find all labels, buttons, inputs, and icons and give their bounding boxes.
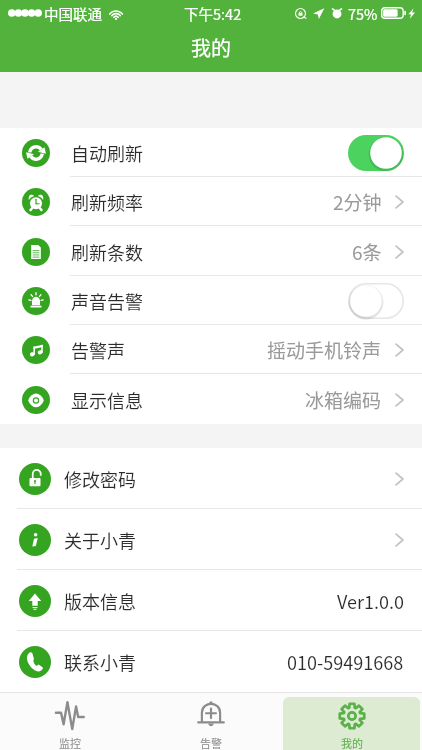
button[interactable]: 修改密码	[0, 448, 422, 509]
staticText: 告警	[200, 735, 222, 750]
staticText: 6条	[352, 238, 382, 266]
staticText: 2分钟	[333, 188, 382, 216]
staticText: 监控	[59, 735, 81, 750]
staticText: 修改密码	[64, 466, 136, 492]
button[interactable]: 联系小青	[0, 631, 422, 692]
button[interactable]: Switch off	[348, 283, 404, 319]
staticText: 关于小青	[64, 527, 136, 553]
button[interactable]: 告警声	[0, 325, 422, 374]
staticText: 75%	[348, 3, 378, 24]
staticText: 010-59491668	[287, 649, 404, 675]
staticText: 摇动手机铃声	[267, 336, 382, 364]
staticText: 联系小青	[64, 649, 136, 675]
button[interactable]: Monitor	[2, 697, 138, 750]
button[interactable]: 刷新条数	[0, 227, 422, 276]
button[interactable]: 关于小青	[0, 509, 422, 570]
button[interactable]: 显示信息	[0, 375, 422, 424]
button[interactable]: Switch on	[348, 135, 404, 171]
button[interactable]: 声音告警	[0, 276, 422, 325]
staticText: 我的	[191, 33, 231, 62]
staticText: 告警声	[71, 337, 125, 363]
staticText: 自动刷新	[71, 140, 143, 166]
staticText: 我的	[341, 735, 363, 750]
button[interactable]: 版本信息	[0, 570, 422, 631]
staticText: 刷新频率	[71, 189, 143, 215]
button[interactable]: 刷新频率	[0, 177, 422, 226]
button[interactable]: Alarms	[142, 697, 279, 750]
button[interactable]: 自动刷新	[0, 128, 422, 177]
button[interactable]: Mine	[283, 697, 420, 750]
staticText: 下午5:42	[184, 3, 242, 24]
staticText: Ver1.0.0	[337, 588, 404, 614]
staticText: 显示信息	[71, 387, 143, 413]
staticText: 声音告警	[71, 288, 143, 314]
staticText: 冰箱编码	[305, 386, 382, 414]
staticText: 刷新条数	[71, 239, 143, 265]
staticText: 中国联通	[44, 3, 102, 24]
staticText: 版本信息	[64, 588, 136, 614]
